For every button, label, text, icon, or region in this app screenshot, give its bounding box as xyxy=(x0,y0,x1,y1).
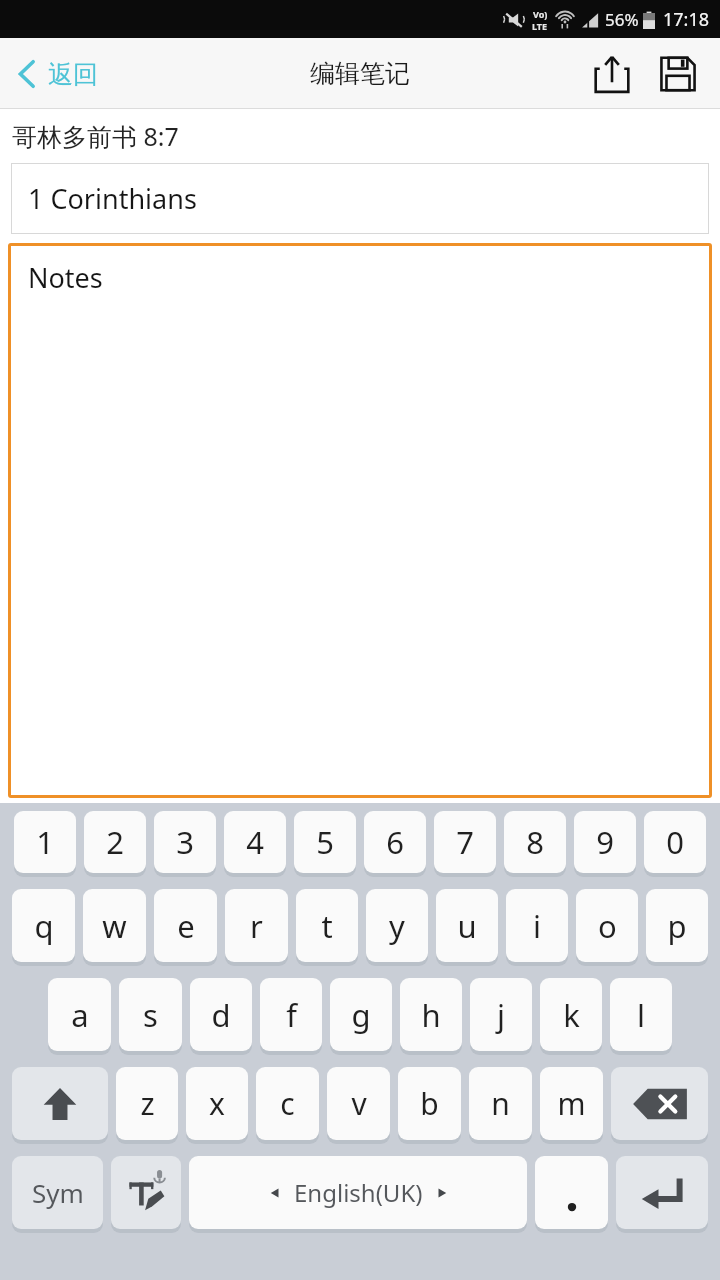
staticText: 5 xyxy=(316,821,334,863)
button[interactable]: k xyxy=(540,978,602,1051)
staticText: x xyxy=(209,1083,225,1124)
button[interactable]: o xyxy=(576,889,638,962)
button[interactable]: d xyxy=(190,978,252,1051)
button[interactable]: Shift xyxy=(12,1067,108,1140)
button[interactable]: u xyxy=(436,889,498,962)
staticText: 编辑笔记 xyxy=(310,58,410,89)
button[interactable]: f xyxy=(260,978,322,1051)
staticText: 9 xyxy=(596,821,614,863)
button[interactable]: 返回 xyxy=(6,51,108,97)
button[interactable]: l xyxy=(610,978,672,1051)
staticText: Vo) xyxy=(533,8,548,20)
staticText: d xyxy=(211,994,231,1036)
button[interactable]: y xyxy=(366,889,428,962)
button[interactable]: 2 xyxy=(84,811,146,873)
button[interactable]: 3 xyxy=(154,811,216,873)
staticText: 56% xyxy=(605,8,639,31)
button[interactable]: s xyxy=(119,978,182,1051)
button[interactable]: Notes xyxy=(8,243,712,798)
button[interactable]: r xyxy=(225,889,288,962)
staticText: m xyxy=(557,1083,586,1124)
button[interactable]: Sym xyxy=(12,1156,103,1229)
staticText: l xyxy=(637,994,645,1036)
staticText: q xyxy=(34,905,54,947)
staticText: n xyxy=(491,1083,510,1124)
button[interactable]: x xyxy=(186,1067,248,1140)
button[interactable]: e xyxy=(154,889,217,962)
button[interactable]: 0 xyxy=(644,811,706,873)
staticText: 0 xyxy=(666,821,684,863)
button[interactable]: t xyxy=(296,889,358,962)
button[interactable]: 9 xyxy=(574,811,636,873)
staticText: Sym xyxy=(32,1175,84,1210)
staticText: g xyxy=(351,994,371,1036)
button[interactable]: a xyxy=(48,978,111,1051)
staticText: t xyxy=(321,905,333,947)
button[interactable]: Share xyxy=(586,48,638,100)
button[interactable]: g xyxy=(330,978,392,1051)
staticText: j xyxy=(497,994,505,1036)
staticText: 2 xyxy=(106,821,124,863)
button[interactable]: Backspace xyxy=(611,1067,708,1140)
staticText: k xyxy=(563,994,580,1036)
staticText: u xyxy=(457,905,477,947)
staticText: z xyxy=(140,1083,155,1124)
staticText: 1 Corinthians xyxy=(28,180,197,217)
staticText: 17:18 xyxy=(663,7,710,32)
button[interactable]: 4 xyxy=(224,811,286,873)
staticText: 3 xyxy=(176,821,194,863)
staticText: v xyxy=(351,1083,367,1124)
staticText: s xyxy=(143,994,158,1036)
button[interactable]: Enter xyxy=(616,1156,708,1229)
staticText: 6 xyxy=(386,821,404,863)
staticText: b xyxy=(420,1083,439,1124)
button[interactable]: 5 xyxy=(294,811,356,873)
button[interactable]: w xyxy=(83,889,146,962)
button[interactable]: Save xyxy=(652,48,704,100)
button[interactable]: j xyxy=(470,978,532,1051)
staticText: y xyxy=(389,905,405,947)
button[interactable]: 1 Corinthians xyxy=(11,163,709,234)
staticText: r xyxy=(250,905,263,947)
staticText: 返回 xyxy=(48,59,98,90)
button[interactable]: i xyxy=(506,889,568,962)
button[interactable]: 1 xyxy=(14,811,76,873)
button[interactable]: c xyxy=(256,1067,319,1140)
button[interactable]: h xyxy=(400,978,462,1051)
staticText: 4 xyxy=(246,821,264,863)
button[interactable]: 7 xyxy=(434,811,496,873)
staticText: 哥林多前书 8:7 xyxy=(12,119,179,153)
button[interactable]: v xyxy=(327,1067,390,1140)
staticText: 8 xyxy=(526,821,544,863)
staticText: i xyxy=(533,905,541,947)
staticText: Notes xyxy=(28,259,103,296)
staticText: 7 xyxy=(456,821,474,863)
staticText: English(UK) xyxy=(294,1176,423,1209)
staticText: LTE xyxy=(532,20,548,32)
staticText: p xyxy=(667,905,687,947)
button[interactable]: 8 xyxy=(504,811,566,873)
staticText: e xyxy=(177,905,195,947)
staticText: c xyxy=(280,1083,295,1124)
button[interactable]: q xyxy=(12,889,75,962)
button[interactable] xyxy=(535,1156,608,1229)
button[interactable]: b xyxy=(398,1067,461,1140)
button[interactable]: z xyxy=(116,1067,178,1140)
button[interactable]: English(UK) xyxy=(189,1156,527,1229)
staticText: h xyxy=(421,994,441,1036)
button[interactable]: m xyxy=(540,1067,603,1140)
button[interactable]: Handwriting input xyxy=(111,1156,181,1229)
staticText: w xyxy=(102,905,127,947)
staticText: o xyxy=(598,905,617,947)
button[interactable]: n xyxy=(469,1067,532,1140)
button[interactable]: 6 xyxy=(364,811,426,873)
button[interactable]: p xyxy=(646,889,708,962)
staticText: 1 xyxy=(36,821,54,863)
staticText: a xyxy=(71,994,89,1036)
staticText: f xyxy=(286,994,297,1036)
